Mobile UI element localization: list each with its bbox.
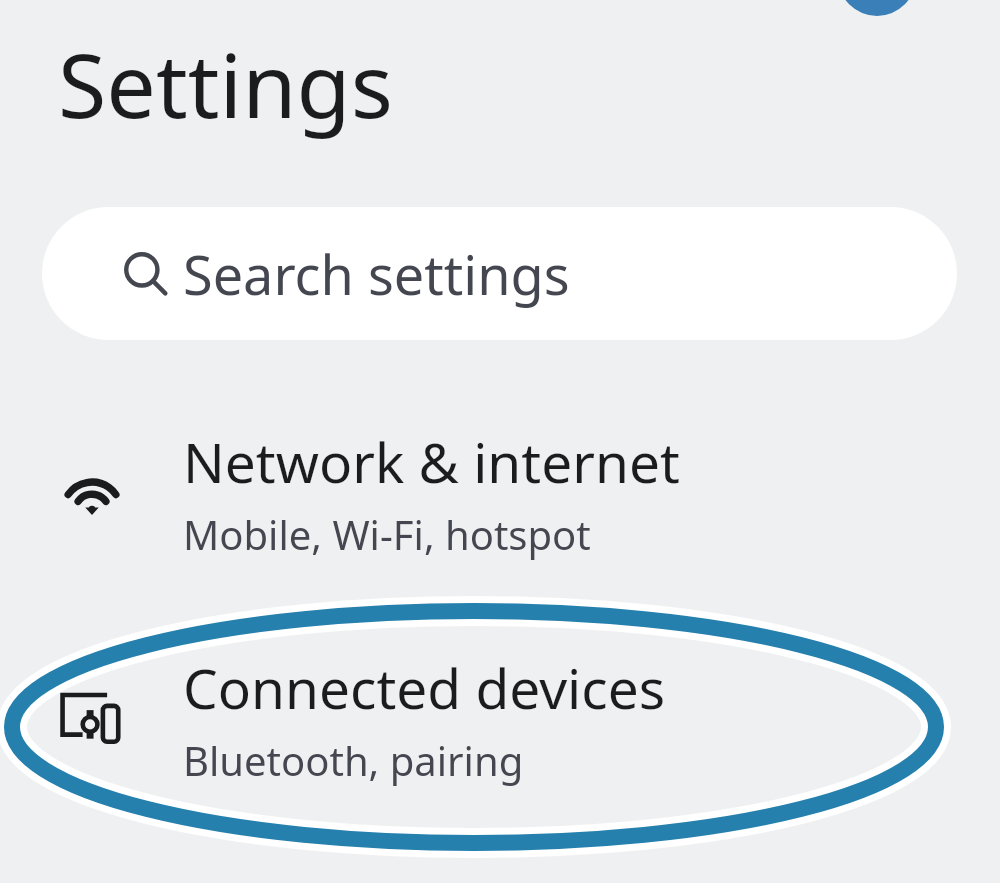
other: Network and internet bbox=[60, 460, 124, 524]
staticText: Connected devices bbox=[183, 650, 666, 725]
staticText: Search settings bbox=[183, 237, 570, 311]
staticText: Network & internet bbox=[183, 424, 680, 499]
staticText: Settings bbox=[58, 24, 393, 144]
staticText: Mobile, Wi-Fi, hotspot bbox=[183, 507, 591, 561]
other: Connected devices bbox=[60, 686, 124, 750]
staticText: Bluetooth, pairing bbox=[183, 733, 524, 787]
button[interactable]: Search settings bbox=[42, 207, 957, 340]
button[interactable]: Network and internet bbox=[0, 422, 1000, 562]
button[interactable]: Connected devices bbox=[0, 648, 1000, 788]
